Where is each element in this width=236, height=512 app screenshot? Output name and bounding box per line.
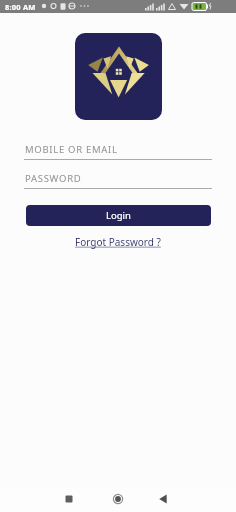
- button[interactable]: [106, 487, 130, 511]
- staticText: MOBILE OR EMAIL: [25, 143, 118, 156]
- button[interactable]: PASSWORD: [24, 172, 212, 189]
- staticText: Login: [106, 209, 131, 222]
- staticText: PASSWORD: [25, 172, 82, 185]
- staticText: 8:00 AM: [5, 2, 36, 12]
- button[interactable]: MOBILE OR EMAIL: [24, 143, 212, 160]
- button[interactable]: Login: [26, 205, 211, 226]
- button[interactable]: [151, 487, 175, 511]
- button[interactable]: [57, 487, 81, 511]
- button[interactable]: [75, 33, 162, 120]
- button[interactable]: Forgot Password ?: [71, 231, 165, 253]
